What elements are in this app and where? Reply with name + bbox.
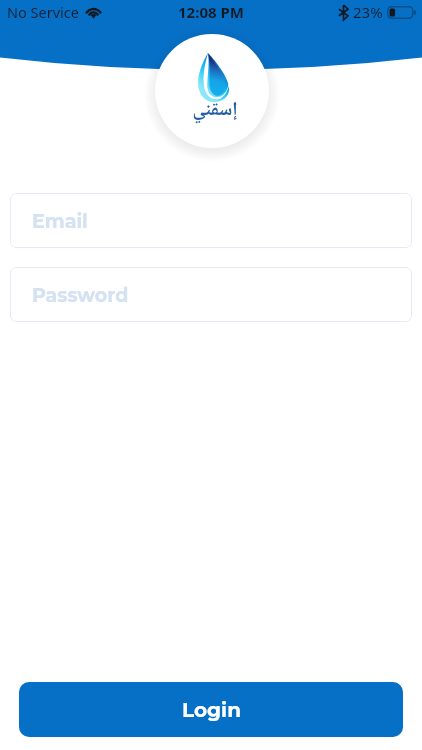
staticText: 23% — [353, 2, 383, 22]
button[interactable]: Login — [19, 682, 403, 737]
staticText: Login — [182, 698, 241, 722]
staticText: Password — [32, 284, 129, 307]
staticText: Email — [32, 210, 88, 233]
staticText: إسقني — [192, 95, 238, 125]
button[interactable]: Password — [10, 267, 412, 322]
staticText: 12:08 PM — [178, 2, 244, 22]
button[interactable]: Email — [10, 193, 412, 248]
staticText: No Service — [7, 2, 79, 22]
